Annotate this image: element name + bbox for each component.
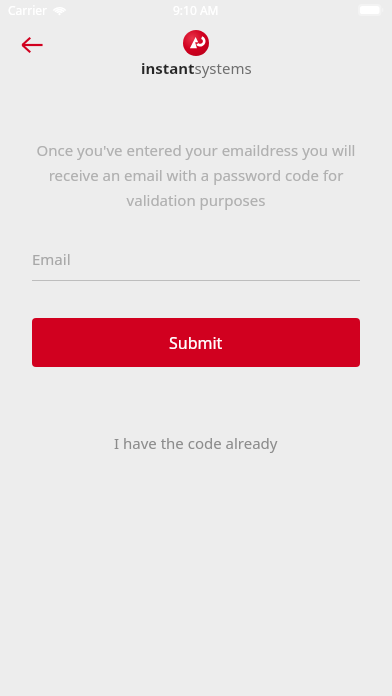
- button[interactable]: Email: [32, 238, 360, 280]
- staticText: I have the code already: [114, 433, 278, 453]
- staticText: 9:10 AM: [173, 2, 219, 18]
- staticText: Submit: [169, 332, 223, 354]
- button[interactable]: Back: [10, 30, 54, 60]
- button[interactable]: Submit: [32, 318, 360, 367]
- staticText: Email: [32, 249, 71, 269]
- staticText: instantsystems: [141, 58, 252, 78]
- staticText: Carrier: [8, 2, 48, 18]
- button[interactable]: I have the code already: [96, 424, 296, 462]
- staticText: Once you've entered your emaildress you …: [30, 140, 362, 210]
